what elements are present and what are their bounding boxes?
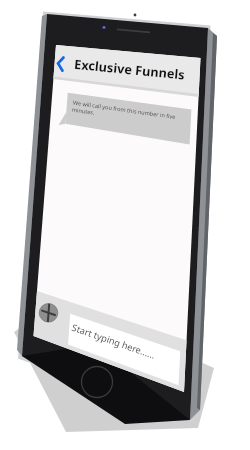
- button[interactable]: Add attachment: [30, 299, 51, 321]
- button[interactable]: Back: [25, 56, 48, 76]
- button[interactable]: Start typing here: [68, 299, 193, 326]
